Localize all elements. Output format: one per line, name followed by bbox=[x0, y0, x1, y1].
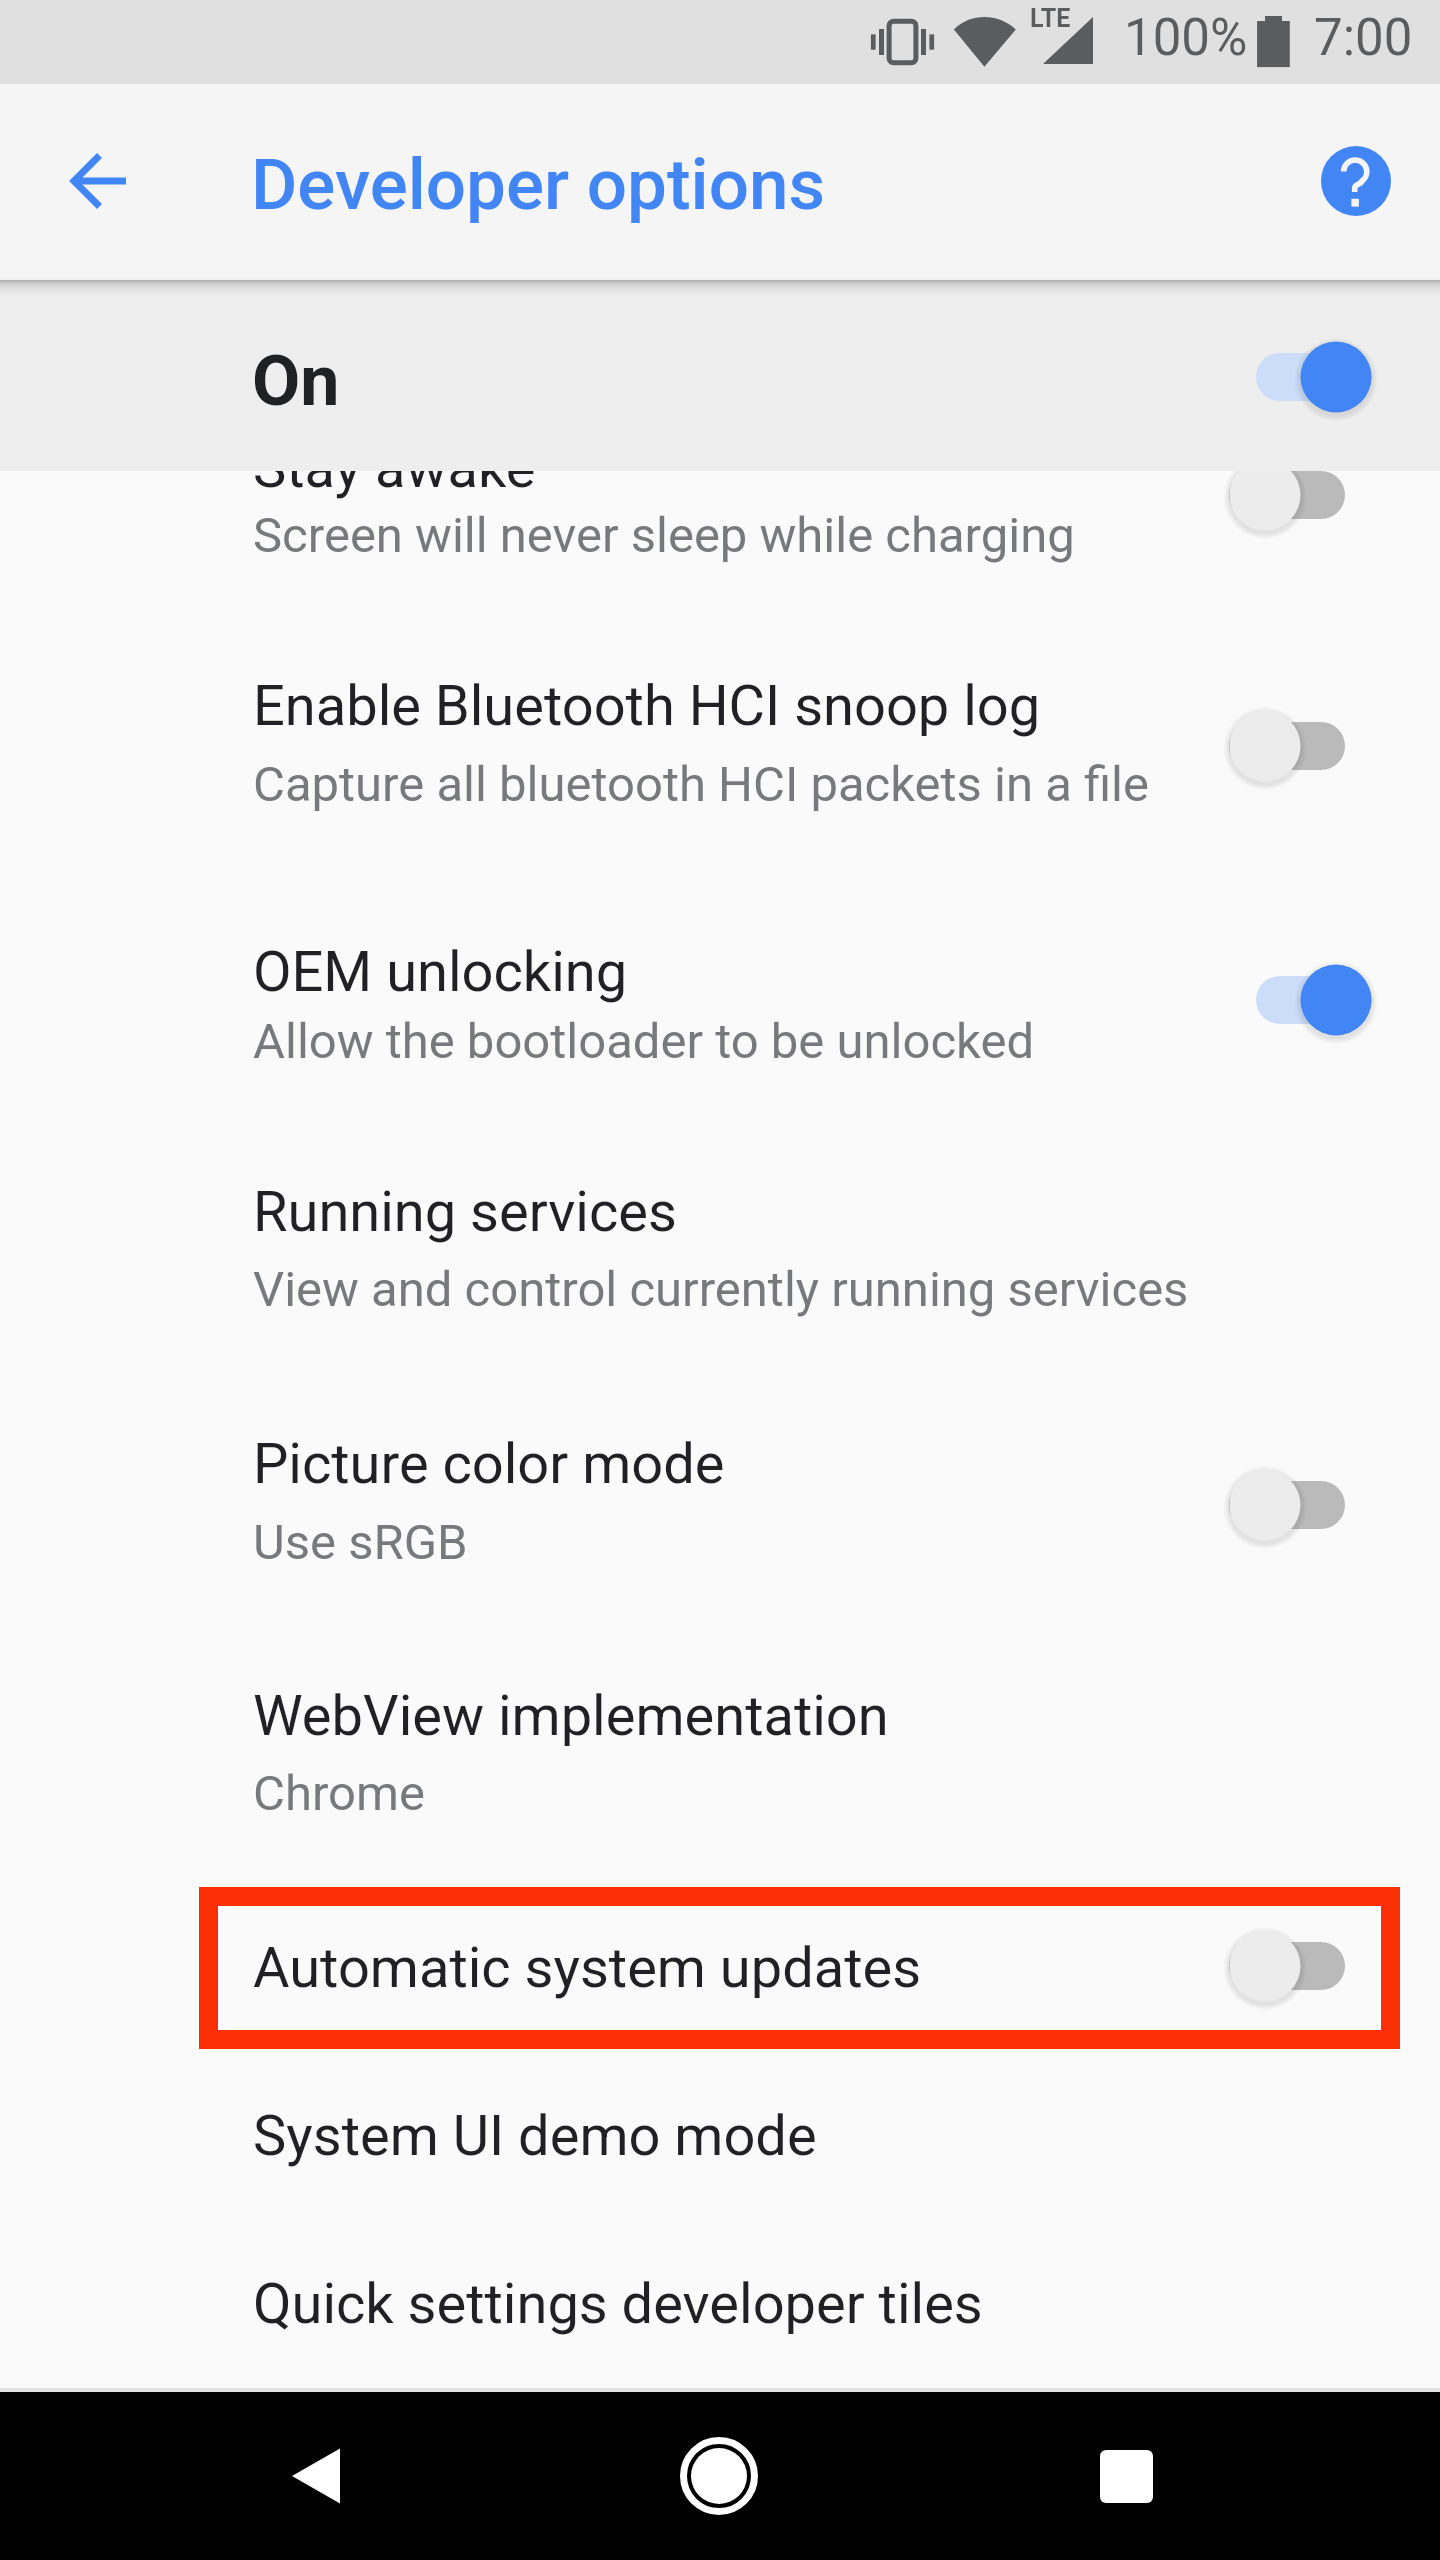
staticText: 100% bbox=[1124, 8, 1248, 68]
button[interactable]: Running services bbox=[0, 1125, 1440, 1375]
button[interactable]: Automatic system updates bbox=[0, 1887, 1440, 2049]
button[interactable]: OEM unlocking bbox=[0, 870, 1440, 1120]
button[interactable]: Quick settings developer tiles bbox=[0, 2238, 1440, 2406]
staticText: Screen will never sleep while charging bbox=[253, 507, 1075, 564]
button[interactable]: Recent apps bbox=[1046, 2392, 1206, 2560]
button[interactable]: On bbox=[0, 279, 1440, 471]
staticText: 7:00 bbox=[1314, 8, 1413, 68]
staticText: On bbox=[252, 340, 340, 422]
staticText: Picture color mode bbox=[253, 1431, 725, 1497]
staticText: View and control currently running servi… bbox=[253, 1261, 1189, 1318]
staticText: Running services bbox=[253, 1179, 677, 1245]
button[interactable]: Stay awake bbox=[0, 400, 1440, 590]
staticText: Use sRGB bbox=[253, 1514, 468, 1571]
staticText: Enable Bluetooth HCI snoop log bbox=[253, 673, 1041, 739]
staticText: Chrome bbox=[253, 1765, 425, 1822]
button[interactable]: Back bbox=[236, 2392, 396, 2560]
staticText: Stay awake bbox=[253, 435, 536, 501]
staticText: Developer options bbox=[251, 143, 826, 226]
button[interactable]: Navigate up bbox=[42, 125, 154, 237]
staticText: Automatic system updates bbox=[253, 1935, 922, 2001]
button[interactable]: Enable Bluetooth HCI snoop log bbox=[0, 600, 1440, 850]
button[interactable]: Home bbox=[639, 2392, 799, 2560]
button[interactable]: Help bbox=[1300, 125, 1412, 237]
staticText: LTE bbox=[1030, 4, 1071, 33]
staticText: System UI demo mode bbox=[253, 2103, 817, 2169]
button[interactable]: Picture color mode bbox=[0, 1378, 1440, 1628]
staticText: Allow the bootloader to be unlocked bbox=[253, 1013, 1035, 1070]
staticText: Capture all bluetooth HCI packets in a f… bbox=[253, 756, 1150, 813]
button[interactable]: System UI demo mode bbox=[0, 2070, 1440, 2238]
staticText: WebView implementation bbox=[253, 1683, 889, 1749]
staticText: OEM unlocking bbox=[253, 939, 628, 1005]
staticText: Quick settings developer tiles bbox=[253, 2271, 983, 2337]
button[interactable]: WebView implementation bbox=[0, 1630, 1440, 1880]
